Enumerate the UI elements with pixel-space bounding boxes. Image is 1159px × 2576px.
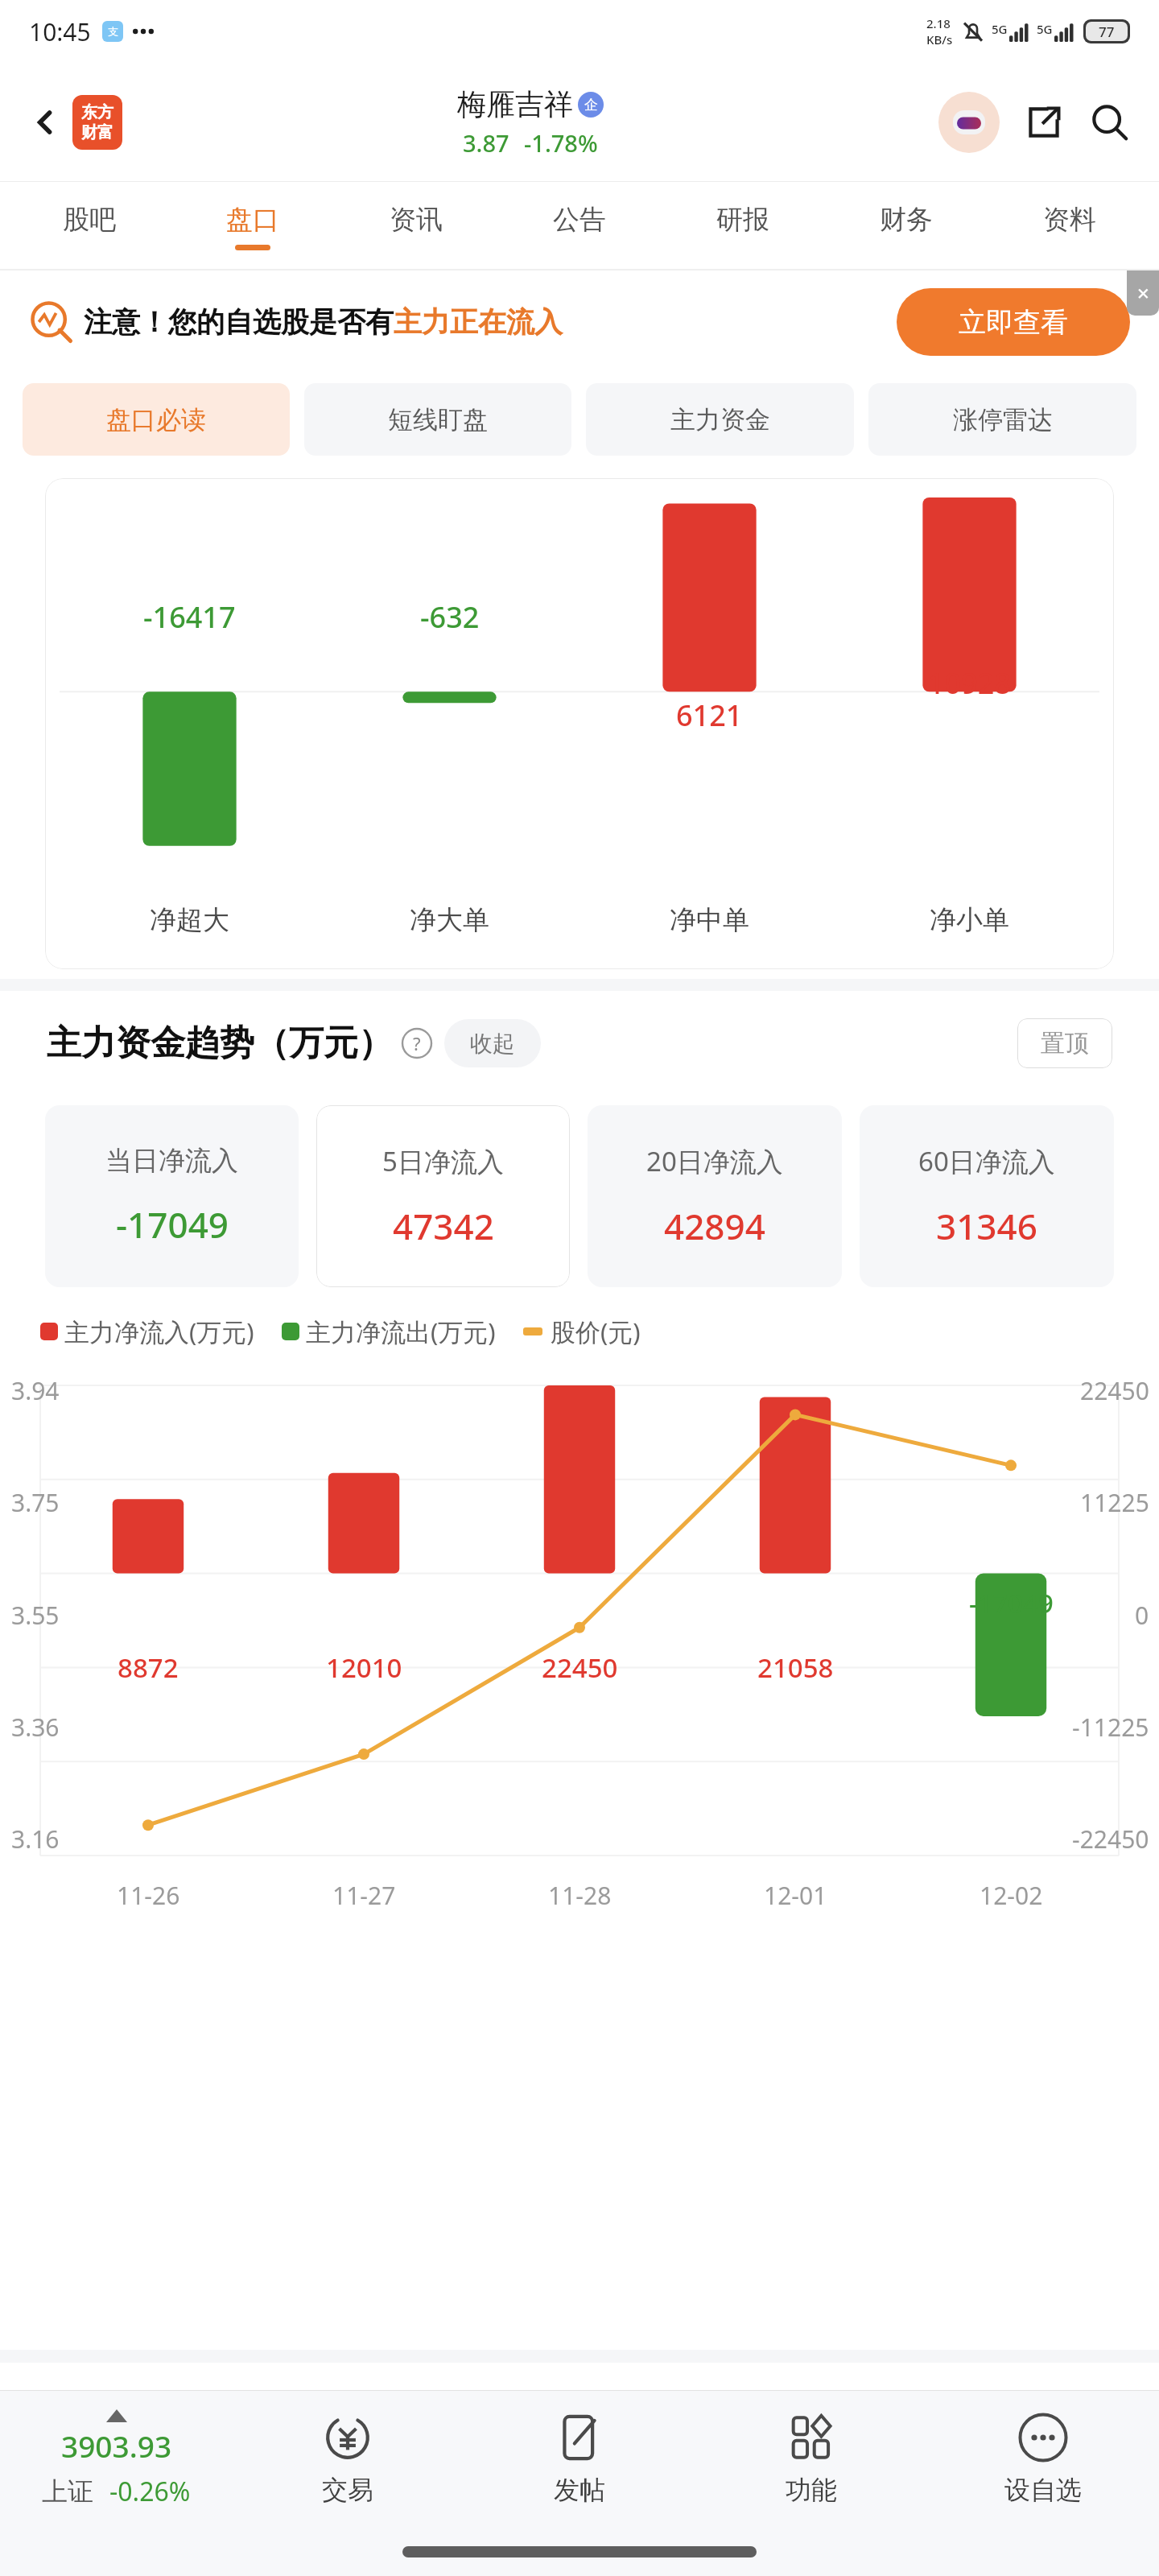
staticText: 42894 — [664, 1202, 765, 1250]
button[interactable]: Help — [401, 1027, 433, 1059]
staticText: 10928 — [928, 663, 1011, 703]
button[interactable]: Back — [23, 100, 68, 145]
button[interactable]: 5日净流入 — [316, 1105, 570, 1287]
staticText: 10:45 — [29, 15, 91, 48]
button[interactable]: 东方 — [72, 95, 122, 150]
button[interactable]: 当日净流入 — [45, 1105, 299, 1287]
button[interactable]: 立即查看 — [897, 288, 1130, 356]
staticText: 8872 — [118, 1649, 179, 1686]
button[interactable]: 收起 — [444, 1019, 541, 1067]
staticText: 盘口 — [226, 203, 279, 237]
staticText: 立即查看 — [959, 305, 1068, 340]
staticText: -11225 — [1072, 1711, 1149, 1744]
staticText: -17049 — [969, 1585, 1054, 1621]
staticText: 主力资金 — [670, 404, 770, 436]
staticText: 77 — [1099, 23, 1115, 41]
staticText: 支 — [108, 25, 118, 38]
staticText: 净超大 — [150, 903, 229, 937]
button[interactable]: 涨停雷达 — [868, 383, 1136, 456]
staticText: 22450 — [542, 1649, 618, 1686]
staticText: 置顶 — [1041, 1028, 1089, 1059]
button[interactable]: 60日净流入 — [860, 1105, 1114, 1287]
button[interactable]: 置顶 — [1017, 1018, 1112, 1068]
staticText: 11-27 — [332, 1879, 396, 1912]
staticText: 3.94 — [11, 1374, 60, 1407]
button[interactable]: 资讯 — [334, 182, 497, 270]
button[interactable]: 公告 — [497, 182, 661, 270]
staticText: 股价(元) — [551, 1315, 641, 1348]
button[interactable]: 发帖 — [464, 2391, 695, 2528]
staticText: KB/s — [926, 31, 953, 47]
other: Silent — [961, 19, 985, 43]
staticText: 东方 — [81, 102, 113, 122]
staticText: 5G — [1037, 21, 1053, 37]
staticText: 22450 — [1080, 1374, 1149, 1407]
staticText: -0.26% — [109, 2474, 191, 2509]
staticText: 净小单 — [930, 903, 1009, 937]
button[interactable]: 资料 — [988, 182, 1151, 270]
staticText: 主力净流入(万元) — [64, 1315, 254, 1348]
staticText: 21058 — [757, 1649, 834, 1686]
button[interactable]: Assistant — [938, 92, 1000, 153]
staticText: 资讯 — [390, 203, 443, 237]
staticText: 上证 — [42, 2475, 93, 2508]
staticText: 6121 — [676, 696, 743, 735]
staticText: 梅雁吉祥 — [457, 86, 573, 122]
button[interactable]: Close — [1127, 270, 1159, 316]
staticText: -1.78% — [524, 127, 598, 159]
button[interactable]: 短线盯盘 — [304, 383, 571, 456]
button[interactable]: 20日净流入 — [588, 1105, 842, 1287]
staticText: 5G — [992, 21, 1008, 37]
staticText: 20日净流入 — [646, 1143, 783, 1179]
staticText: 3.36 — [11, 1711, 60, 1744]
staticText: -22450 — [1072, 1823, 1149, 1856]
staticText: ✕ — [1136, 284, 1150, 303]
button[interactable]: 财务 — [824, 182, 988, 270]
button[interactable]: 主力资金 — [586, 383, 854, 456]
staticText: -17049 — [116, 1200, 229, 1249]
staticText: 60日净流入 — [918, 1143, 1055, 1179]
button[interactable]: 盘口必读 — [23, 383, 290, 456]
staticText: 涨停雷达 — [953, 404, 1053, 436]
button[interactable]: Search — [1085, 97, 1135, 147]
staticText: 当日净流入 — [105, 1144, 238, 1178]
staticText: 设自选 — [1004, 2474, 1082, 2506]
button[interactable]: -16417 — [45, 478, 1114, 969]
staticText: 31346 — [936, 1202, 1037, 1250]
staticText: 净大单 — [410, 903, 489, 937]
staticText: ? — [413, 1031, 421, 1055]
staticText: 3903.93 — [61, 2425, 172, 2466]
staticText: 12-01 — [764, 1879, 827, 1912]
staticText: 2.18 — [926, 15, 951, 31]
staticText: 3.75 — [11, 1486, 60, 1519]
staticText: 财富 — [81, 122, 113, 142]
button[interactable]: Share — [1019, 97, 1069, 147]
staticText: 11-26 — [117, 1879, 180, 1912]
staticText: 资料 — [1043, 203, 1096, 237]
button[interactable]: 股吧 — [8, 182, 171, 270]
staticText: -16417 — [143, 597, 236, 637]
button[interactable]: 交易 — [232, 2391, 464, 2528]
staticText: 47342 — [393, 1202, 494, 1250]
staticText: 功能 — [786, 2474, 837, 2506]
staticText: 主力净流出(万元) — [306, 1315, 496, 1348]
staticText: 5日净流入 — [382, 1143, 504, 1179]
staticText: -632 — [420, 597, 480, 637]
staticText: 11225 — [1080, 1486, 1149, 1519]
staticText: 主力资金趋势（万元） — [47, 1022, 393, 1065]
button[interactable]: 设自选 — [927, 2391, 1159, 2528]
button[interactable]: 功能 — [695, 2391, 927, 2528]
staticText: 净中单 — [670, 903, 749, 937]
staticText: 财务 — [880, 203, 933, 237]
staticText: 短线盯盘 — [388, 404, 488, 436]
staticText: 3.16 — [11, 1823, 60, 1856]
button[interactable]: 研报 — [661, 182, 824, 270]
staticText: 收起 — [470, 1030, 515, 1058]
button[interactable]: 3903.93 — [0, 2391, 232, 2528]
staticText: 12010 — [326, 1649, 402, 1686]
staticText: 3.55 — [11, 1599, 60, 1632]
button[interactable]: 盘口 — [171, 182, 334, 270]
staticText: 公告 — [553, 203, 606, 237]
staticText: 注意！您的自选股是否有 — [84, 304, 394, 340]
staticText: 0 — [1135, 1599, 1149, 1632]
